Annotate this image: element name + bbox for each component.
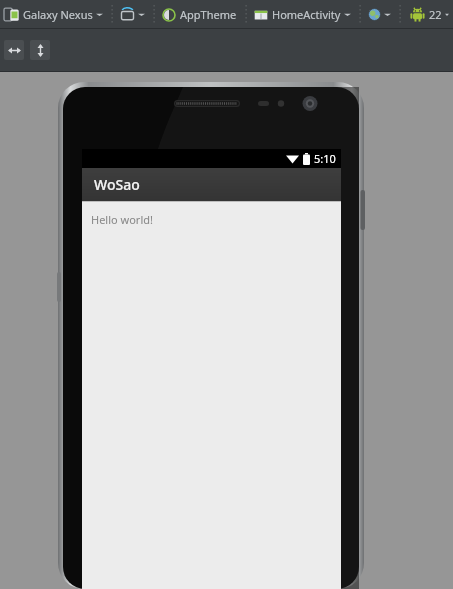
button[interactable]: 22 <box>406 5 453 24</box>
staticText: WoSao <box>94 175 140 194</box>
staticText: Galaxy Nexus <box>23 7 93 22</box>
button[interactable]: Locale <box>364 6 395 23</box>
button[interactable]: Galaxy Nexus <box>0 5 107 24</box>
staticText: HomeActivity <box>272 7 341 22</box>
button[interactable]: Adjust width <box>4 40 24 60</box>
staticText: 22 <box>429 7 442 22</box>
staticText: Hello world! <box>91 212 153 227</box>
button[interactable]: Orientation <box>116 5 149 24</box>
button[interactable]: Adjust height <box>30 40 50 60</box>
button[interactable]: HomeActivity <box>250 5 355 24</box>
staticText: 5:10 <box>314 151 336 166</box>
button[interactable]: WoSao <box>82 168 341 201</box>
button[interactable]: AppTheme <box>158 5 241 24</box>
staticText: AppTheme <box>180 7 237 22</box>
